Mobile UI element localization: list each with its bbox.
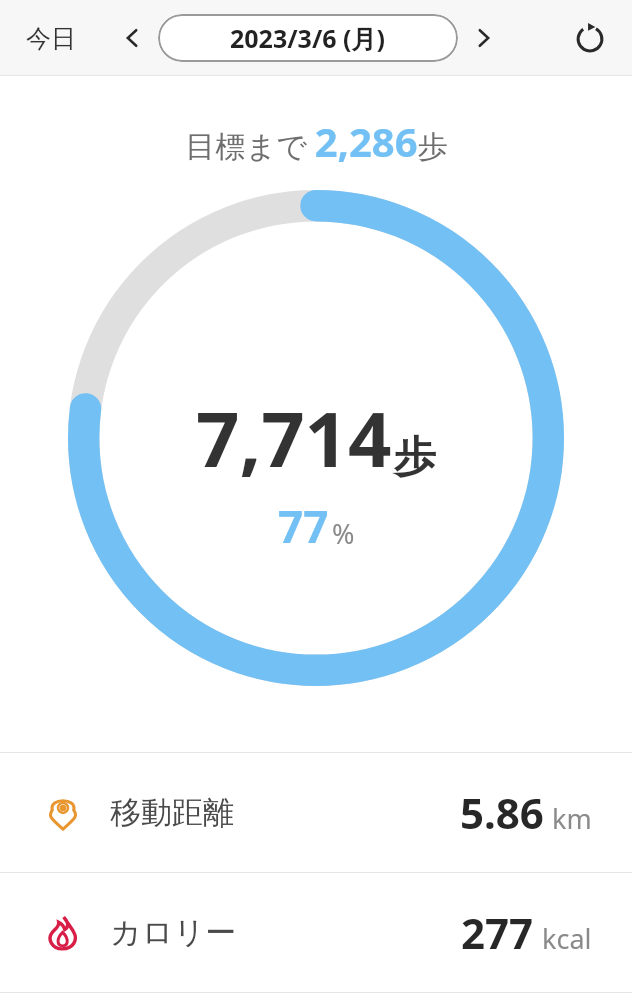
button[interactable]: 移動距離 — [0, 753, 632, 872]
staticText: 目標まで 2,286歩 — [185, 114, 448, 168]
staticText: 5.86 — [460, 784, 544, 841]
button[interactable]: 今日 — [14, 15, 88, 62]
staticText: 2023/3/6 (月) — [230, 21, 386, 55]
staticText: 歩 — [394, 431, 436, 484]
button[interactable]: Refresh — [564, 12, 616, 64]
staticText: kcal — [542, 920, 592, 957]
staticText: % — [332, 515, 355, 552]
button[interactable]: Previous day — [110, 16, 154, 60]
button[interactable]: カロリー — [0, 873, 632, 992]
staticText: 移動距離 — [110, 793, 234, 832]
staticText: 277 — [461, 904, 534, 961]
button[interactable]: Next day — [462, 16, 506, 60]
button[interactable]: 2023/3/6 (月) — [158, 14, 458, 62]
staticText: 77 — [278, 496, 329, 556]
staticText: 今日 — [26, 23, 76, 54]
staticText: 7,714 — [196, 386, 392, 490]
staticText: km — [552, 800, 592, 837]
staticText: カロリー — [110, 913, 237, 952]
